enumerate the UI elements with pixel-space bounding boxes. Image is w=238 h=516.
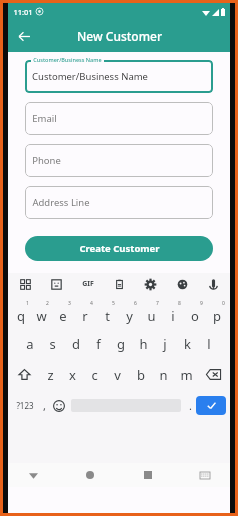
staticText: w	[36, 307, 47, 325]
button[interactable]: 7	[140, 297, 162, 328]
button[interactable]: 9	[184, 297, 206, 328]
button[interactable]: 1	[10, 297, 31, 328]
button[interactable]: 3	[52, 297, 74, 328]
staticText: Phone	[32, 154, 61, 167]
staticText: j	[163, 335, 167, 353]
staticText: q	[17, 307, 25, 325]
button[interactable]: b	[129, 359, 152, 390]
staticText: Create Customer	[79, 242, 160, 255]
button[interactable]: v	[106, 359, 129, 390]
staticText: z	[47, 366, 54, 384]
staticText: g	[117, 335, 125, 353]
staticText: Email	[32, 112, 57, 125]
staticText: m	[180, 366, 193, 384]
button[interactable]: z	[39, 359, 61, 390]
staticText: f	[96, 335, 101, 353]
button[interactable]: Home	[79, 464, 101, 486]
button[interactable]: Switch keyboard	[194, 464, 216, 486]
staticText: u	[147, 307, 156, 325]
button[interactable]: ?123	[12, 390, 38, 421]
button[interactable]: Settings	[141, 275, 159, 293]
button[interactable]: g	[110, 328, 132, 359]
staticText: t	[105, 307, 110, 325]
staticText: l	[207, 335, 211, 353]
staticText: 7	[156, 300, 159, 307]
staticText: 0	[222, 300, 225, 307]
staticText: ?123	[16, 400, 34, 411]
button[interactable]: Period	[184, 390, 196, 421]
button[interactable]: GIF	[79, 275, 97, 293]
staticText: n	[159, 366, 168, 384]
staticText: 4	[90, 300, 93, 307]
staticText: x	[69, 366, 76, 384]
staticText: b	[137, 366, 145, 384]
staticText: r	[82, 307, 88, 325]
button[interactable]: n	[152, 359, 175, 390]
button[interactable]: a	[18, 328, 41, 359]
staticText: 6	[134, 300, 137, 307]
button[interactable]: c	[83, 359, 106, 390]
button[interactable]: d	[64, 328, 87, 359]
button[interactable]: Customer/Business Name	[25, 60, 213, 93]
button[interactable]: Voice input	[204, 275, 222, 293]
button[interactable]: Backspace	[198, 359, 228, 390]
button[interactable]: Back	[12, 24, 36, 48]
staticText: 9	[200, 300, 203, 307]
button[interactable]: 0	[206, 297, 228, 328]
staticText: 8	[178, 300, 181, 307]
button[interactable]: Themes	[173, 275, 191, 293]
button[interactable]: Stickers	[47, 275, 65, 293]
button[interactable]: 4	[74, 297, 96, 328]
staticText: a	[26, 335, 34, 353]
staticText: k	[184, 335, 191, 353]
button[interactable]: Back	[22, 464, 44, 486]
staticText: v	[114, 366, 121, 384]
staticText: .	[189, 398, 192, 413]
staticText: 5	[112, 300, 115, 307]
button[interactable]: x	[61, 359, 83, 390]
button[interactable]: 5	[96, 297, 118, 328]
button[interactable]: Clipboard	[110, 275, 128, 293]
button[interactable]: Apps	[16, 275, 34, 293]
staticText: Address Line	[32, 196, 90, 209]
staticText: GIF	[82, 279, 94, 289]
button[interactable]: Email	[25, 102, 213, 135]
staticText: o	[191, 307, 199, 325]
button[interactable]: Phone	[25, 144, 213, 177]
staticText: s	[49, 335, 56, 353]
button[interactable]: Comma	[38, 390, 50, 421]
staticText: p	[213, 307, 221, 325]
staticText: 1	[26, 300, 29, 307]
button[interactable]: 6	[118, 297, 140, 328]
button[interactable]: 8	[162, 297, 184, 328]
button[interactable]: Address Line	[25, 186, 213, 219]
button[interactable]: 2	[31, 297, 52, 328]
staticText: i	[171, 307, 175, 325]
staticText: h	[139, 335, 148, 353]
button[interactable]: Done	[196, 396, 226, 415]
button[interactable]: h	[132, 328, 154, 359]
button[interactable]: m	[175, 359, 198, 390]
button[interactable]: Create Customer	[25, 236, 213, 261]
button[interactable]: f	[87, 328, 110, 359]
staticText: e	[59, 307, 67, 325]
staticText: ,	[43, 398, 46, 413]
staticText: y	[126, 307, 133, 325]
button[interactable]: Emoji	[50, 390, 68, 421]
button[interactable]: j	[154, 328, 176, 359]
staticText: Customer/Business Name	[33, 56, 102, 63]
button[interactable]: Shift	[10, 359, 39, 390]
staticText: Customer/Business Name	[32, 70, 148, 83]
staticText: 11:01	[13, 7, 33, 17]
staticText: d	[72, 335, 80, 353]
staticText: New Customer	[77, 28, 162, 44]
staticText: c	[91, 366, 98, 384]
button[interactable]: k	[176, 328, 198, 359]
button[interactable]: s	[41, 328, 64, 359]
staticText: 3	[68, 300, 71, 307]
button[interactable]: l	[198, 328, 220, 359]
staticText: 2	[46, 300, 49, 307]
button[interactable]: Recents	[137, 464, 159, 486]
